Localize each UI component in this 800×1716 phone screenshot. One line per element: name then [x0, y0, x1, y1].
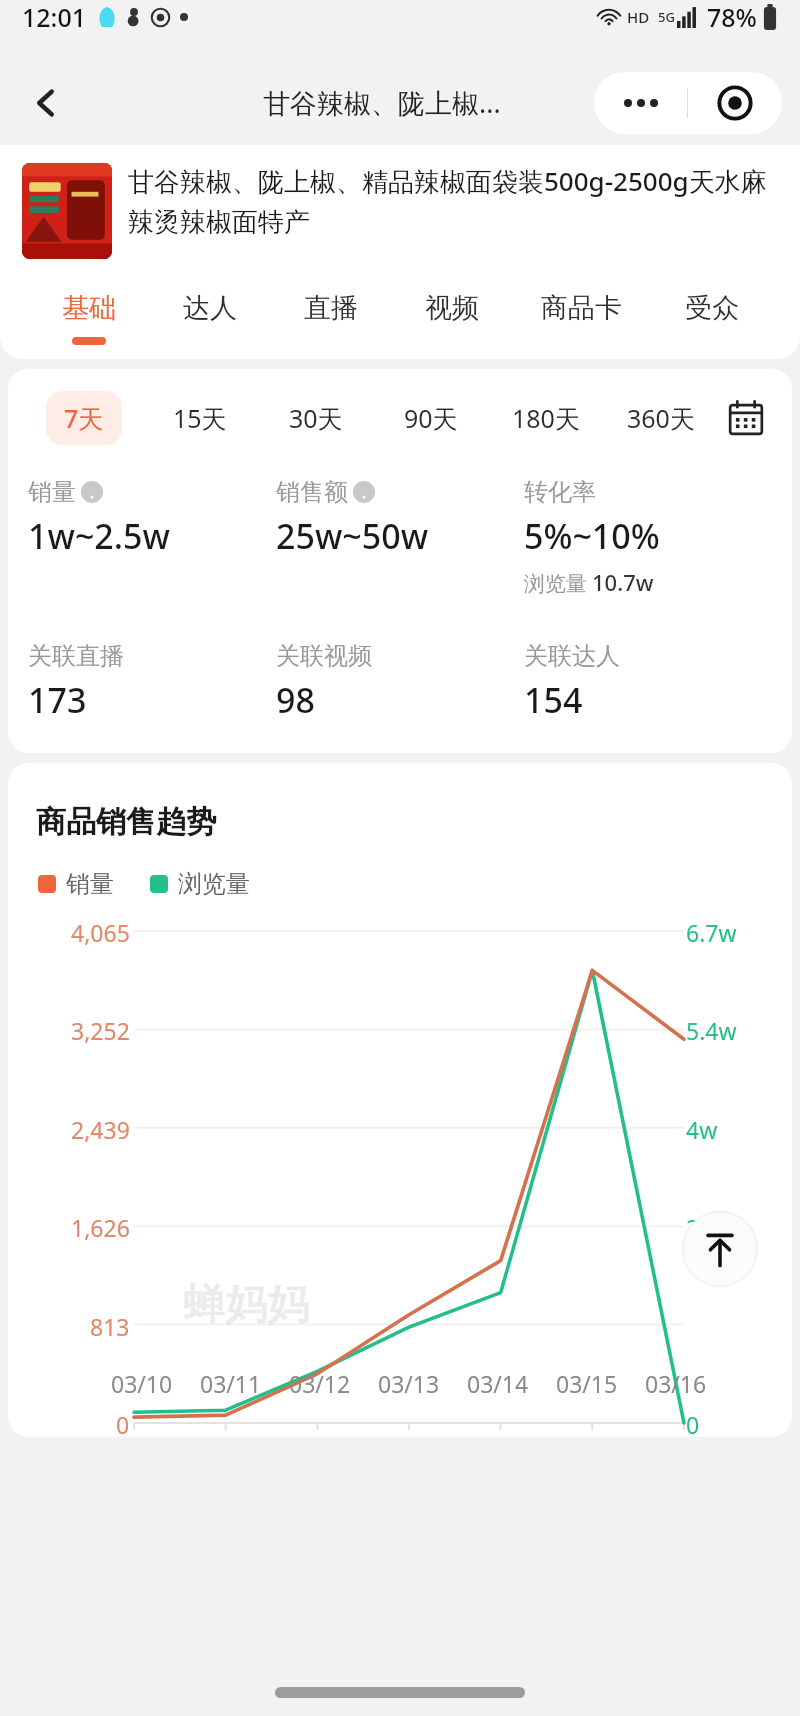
button[interactable]: 基础: [28, 291, 149, 345]
staticText: 154: [524, 677, 583, 723]
staticText: 达人: [183, 291, 237, 325]
staticText: 5.4w: [686, 1015, 737, 1043]
staticText: 转化率: [524, 477, 596, 507]
staticText: 90天: [404, 401, 458, 435]
staticText: 30天: [289, 401, 343, 435]
staticText: 5%~10%: [524, 513, 660, 559]
staticText: 10.7w: [592, 567, 654, 597]
button[interactable]: Target: [688, 72, 782, 134]
button[interactable]: Scroll to top: [682, 1211, 758, 1287]
staticText: 25w~50w: [276, 513, 429, 559]
staticText: 6.7w: [686, 917, 737, 945]
staticText: 直播: [304, 291, 358, 325]
staticText: 5G: [658, 8, 675, 26]
staticText: 浏览量: [524, 571, 587, 597]
button[interactable]: 达人: [149, 291, 270, 345]
staticText: 98: [276, 677, 315, 723]
staticText: 360天: [627, 401, 695, 435]
button[interactable]: 360天: [609, 391, 713, 445]
staticText: 4w: [686, 1114, 718, 1142]
staticText: 销量: [28, 477, 76, 507]
staticText: 甘谷辣椒、陇上椒、精品辣椒面袋装500g-2500g天水麻辣烫辣椒面特产: [128, 163, 778, 239]
staticText: 03/10: [111, 1368, 173, 1399]
staticText: 03/16: [645, 1368, 707, 1399]
button[interactable]: 视频: [391, 291, 512, 345]
staticText: 03/14: [467, 1368, 529, 1399]
staticText: 03/11: [200, 1368, 262, 1399]
button[interactable]: Back: [18, 75, 74, 131]
staticText: 销量: [66, 869, 114, 899]
staticText: 关联达人: [524, 641, 620, 671]
staticText: 1w~2.5w: [28, 513, 170, 559]
staticText: 关联直播: [28, 641, 124, 671]
staticText: 4,065: [71, 917, 130, 945]
staticText: 销售额: [276, 477, 348, 507]
staticText: 3,252: [71, 1015, 130, 1043]
staticText: 15天: [173, 401, 227, 435]
staticText: 813: [90, 1311, 130, 1339]
staticText: 03/13: [378, 1368, 440, 1399]
staticText: 12:01: [22, 0, 87, 34]
staticText: 2.7w: [686, 1212, 737, 1240]
button[interactable]: 7天: [46, 391, 122, 445]
staticText: 甘谷辣椒、陇上椒...: [263, 84, 501, 121]
staticText: 7天: [64, 401, 104, 435]
staticText: 1,626: [71, 1212, 130, 1240]
staticText: 视频: [425, 291, 479, 325]
button[interactable]: 直播: [270, 291, 391, 345]
staticText: 蝉妈妈: [183, 1279, 309, 1332]
staticText: 0: [686, 1409, 700, 1437]
button[interactable]: 90天: [386, 391, 476, 445]
button[interactable]: More options: [594, 72, 687, 134]
staticText: 关联视频: [276, 641, 372, 671]
staticText: 0: [116, 1409, 130, 1437]
button[interactable]: 受众: [651, 291, 772, 345]
staticText: 受众: [685, 291, 739, 325]
staticText: 基础: [62, 291, 116, 325]
button[interactable]: 商品卡: [512, 291, 651, 345]
button[interactable]: Product image: [22, 163, 112, 259]
staticText: 180天: [512, 401, 580, 435]
button[interactable]: 180天: [494, 391, 598, 445]
staticText: 浏览量: [178, 869, 250, 899]
staticText: 商品销售趋势: [36, 803, 216, 841]
button[interactable]: 30天: [271, 391, 361, 445]
button[interactable]: 15天: [155, 391, 245, 445]
staticText: 78%: [707, 0, 757, 34]
button[interactable]: Calendar: [720, 392, 772, 444]
staticText: 03/15: [556, 1368, 618, 1399]
staticText: HD: [627, 7, 650, 27]
staticText: 2,439: [71, 1114, 130, 1142]
staticText: 173: [28, 677, 87, 723]
staticText: 03/12: [289, 1368, 351, 1399]
staticText: 商品卡: [541, 291, 622, 325]
